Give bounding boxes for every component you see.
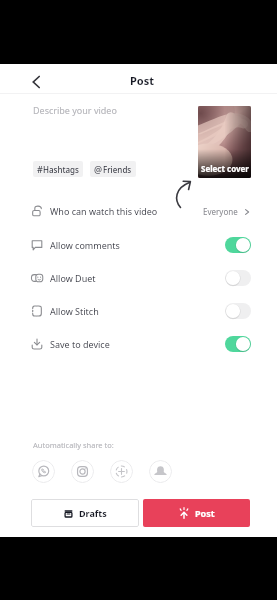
staticText: Post	[130, 73, 155, 88]
button[interactable]: On	[225, 336, 251, 352]
staticText: Hashtags	[43, 164, 79, 175]
staticText: Allow Stitch	[50, 305, 99, 317]
button[interactable]: Save to device	[0, 329, 277, 359]
staticText: Friends	[103, 164, 132, 175]
staticText: #	[37, 163, 43, 175]
button[interactable]: Who can watch this video	[0, 196, 277, 226]
button[interactable]: Share to Snapchat	[149, 460, 172, 483]
button[interactable]: Select cover	[198, 106, 251, 178]
button[interactable]: Back	[24, 70, 48, 94]
staticText: Who can watch this video	[50, 205, 158, 217]
staticText: Drafts	[79, 507, 107, 519]
button[interactable]: On	[225, 237, 251, 253]
staticText: Allow comments	[50, 239, 120, 251]
button[interactable]: More share options	[110, 460, 133, 483]
button[interactable]: Share to WhatsApp	[32, 460, 55, 483]
button[interactable]: #	[33, 161, 83, 177]
button[interactable]: Allow comments	[0, 230, 277, 260]
button[interactable]: Allow Duet	[0, 263, 277, 293]
button[interactable]: @	[90, 161, 136, 177]
staticText: @	[94, 163, 103, 175]
staticText: Describe your video	[33, 104, 117, 116]
button[interactable]: Drafts	[31, 499, 139, 527]
staticText: Save to device	[50, 338, 110, 350]
button[interactable]: Post	[143, 499, 250, 527]
staticText: Allow Duet	[50, 272, 96, 284]
button[interactable]: Allow Stitch	[0, 296, 277, 326]
button[interactable]: Share to Instagram	[71, 460, 94, 483]
staticText: Post	[195, 507, 215, 519]
button[interactable]: Off	[225, 270, 251, 286]
staticText: Select cover	[201, 163, 249, 174]
button[interactable]: Off	[225, 303, 251, 319]
staticText: Automatically share to:	[33, 440, 114, 450]
staticText: Everyone	[203, 206, 238, 217]
